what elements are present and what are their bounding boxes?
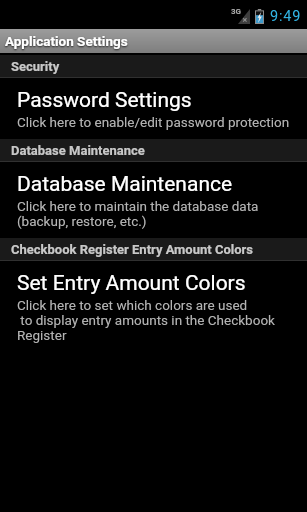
staticText: Application Settings: [5, 33, 128, 49]
button[interactable]: Database Maintenance: [0, 162, 307, 238]
staticText: Click here to maintain the database data…: [17, 199, 259, 229]
staticText: Password Settings: [17, 88, 192, 113]
button[interactable]: Set Entry Amount Colors: [0, 261, 307, 352]
other: Battery charging: [255, 9, 264, 24]
staticText: 3G: [231, 7, 242, 16]
staticText: Click here to enable/edit password prote…: [17, 115, 290, 130]
staticText: Database Maintenance: [17, 172, 233, 197]
other: Signal strength: [238, 9, 250, 24]
staticText: Click here to set which colors are used …: [17, 298, 275, 343]
staticText: Set Entry Amount Colors: [17, 271, 246, 296]
button[interactable]: Password Settings: [0, 78, 307, 139]
staticText: 9:49: [270, 8, 302, 25]
staticText: Database Maintenance: [11, 143, 145, 158]
staticText: Security: [11, 59, 60, 74]
staticText: Checkbook Register Entry Amount Colors: [11, 242, 254, 257]
